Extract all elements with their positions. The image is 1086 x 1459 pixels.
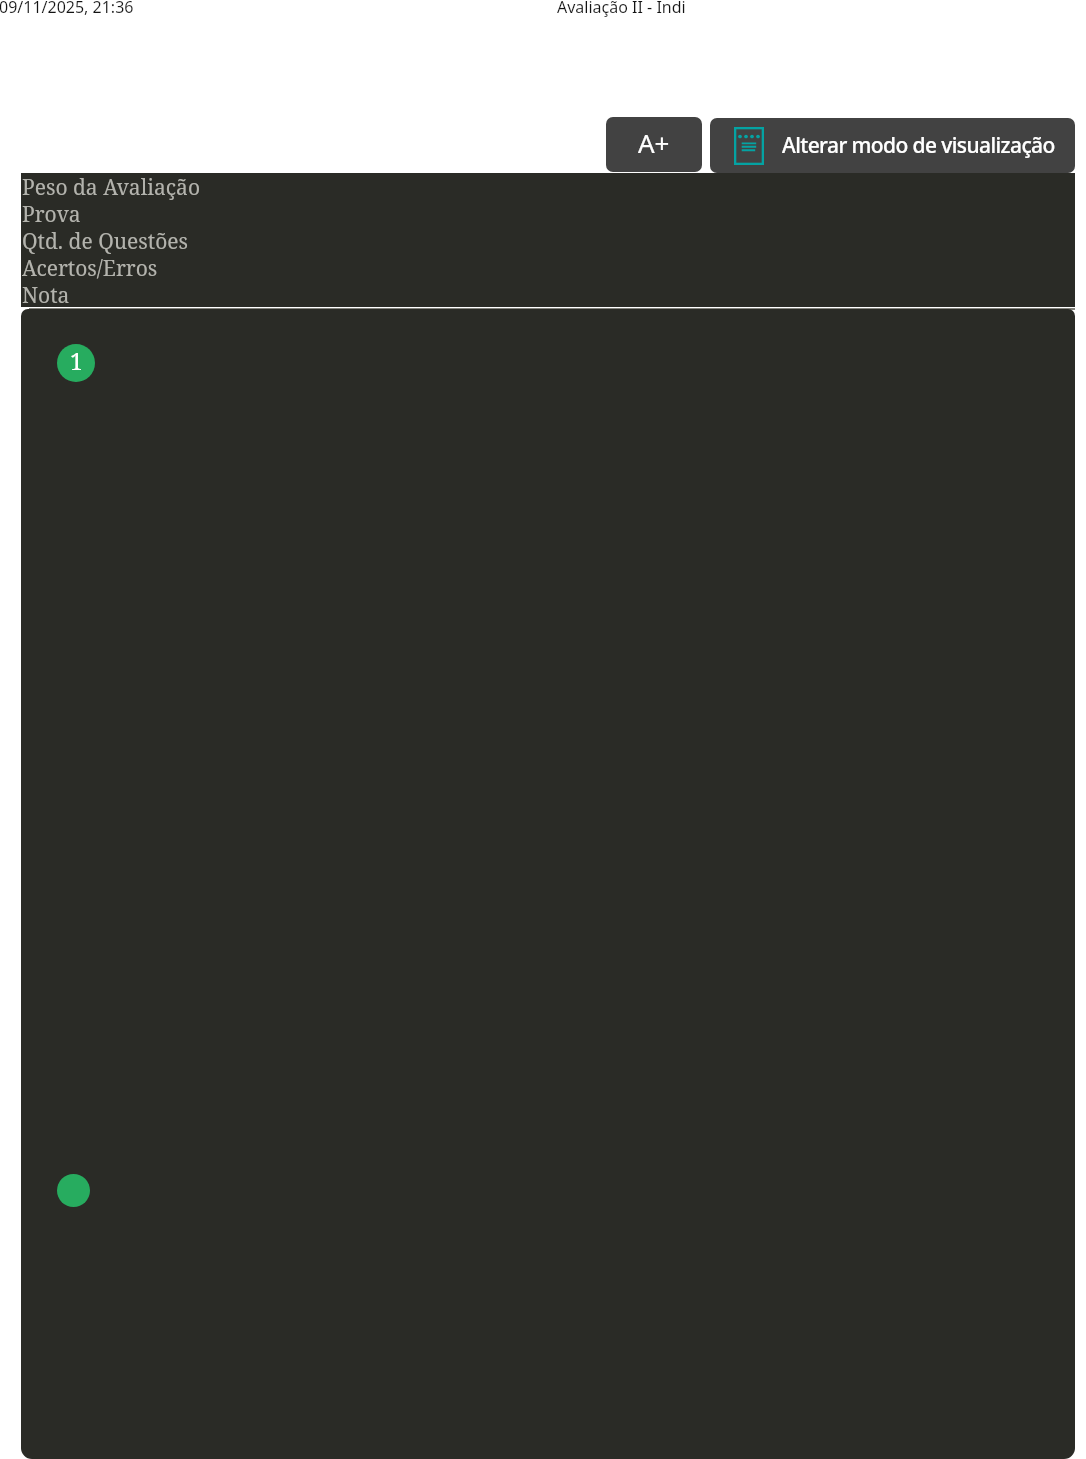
staticText: Peso da Avaliação Prova Qtd. de Questões…: [22, 173, 200, 307]
button[interactable]: Aumentar tamanho da fonte: [606, 117, 702, 172]
button[interactable]: 1: [57, 344, 95, 382]
other: Alterar modo de visualização: [734, 127, 764, 165]
button[interactable]: Alterar modo de visualização: [710, 118, 1075, 173]
staticText: Avaliação II - Indi: [557, 0, 686, 18]
staticText: Alterar modo de visualização: [782, 131, 1055, 160]
button[interactable]: Alternativa correta: [57, 1174, 90, 1207]
staticText: 09/11/2025, 21:36: [0, 0, 134, 18]
staticText: 1: [70, 345, 83, 376]
staticText: A+: [638, 125, 670, 160]
